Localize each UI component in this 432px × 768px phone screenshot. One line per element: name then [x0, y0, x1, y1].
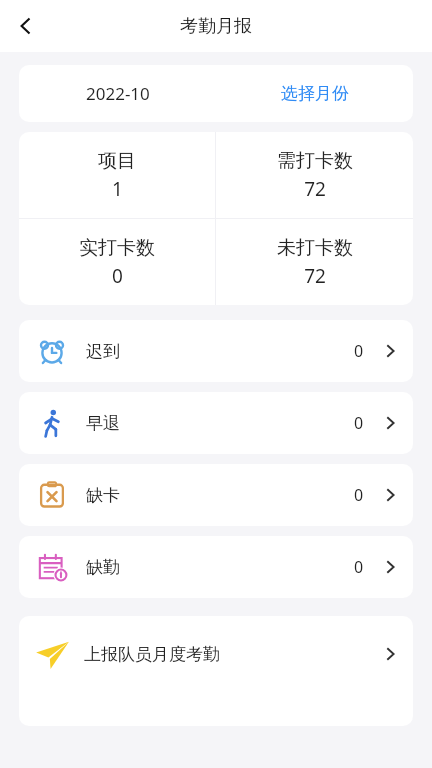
button[interactable]: 上报队员月度考勤 — [19, 616, 413, 726]
button[interactable]: 选择月份 — [216, 65, 413, 122]
staticText: 考勤月报 — [180, 15, 252, 38]
staticText: 早退 — [86, 413, 120, 434]
staticText: 缺卡 — [86, 485, 120, 506]
staticText: 72 — [304, 263, 326, 289]
button[interactable]: 早退 — [19, 392, 413, 454]
staticText: 未打卡数 — [277, 236, 353, 260]
staticText: 选择月份 — [281, 83, 349, 104]
staticText: 0 — [112, 263, 123, 289]
button[interactable]: 迟到 — [19, 320, 413, 382]
staticText: 0 — [354, 556, 364, 578]
staticText: 72 — [304, 176, 326, 202]
staticText: 迟到 — [86, 341, 120, 362]
button[interactable]: 需打卡数 — [216, 132, 413, 218]
staticText: 项目 — [98, 149, 136, 173]
button[interactable]: Back — [0, 0, 52, 52]
staticText: 1 — [112, 176, 123, 202]
button[interactable]: 项目 — [19, 132, 215, 218]
staticText: 2022-10 — [86, 82, 150, 105]
button[interactable]: 未打卡数 — [216, 219, 413, 305]
staticText: 0 — [354, 340, 364, 362]
staticText: 0 — [354, 412, 364, 434]
staticText: 上报队员月度考勤 — [84, 644, 220, 665]
staticText: 0 — [354, 484, 364, 506]
button[interactable]: 缺卡 — [19, 464, 413, 526]
staticText: 缺勤 — [86, 557, 120, 578]
button[interactable]: 缺勤 — [19, 536, 413, 598]
button[interactable]: 实打卡数 — [19, 219, 215, 305]
staticText: 需打卡数 — [277, 149, 353, 173]
staticText: 实打卡数 — [79, 236, 155, 260]
